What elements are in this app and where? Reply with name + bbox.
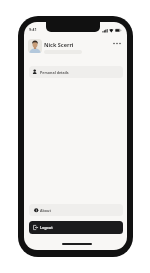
button[interactable]: Logout [29,221,123,234]
staticText: 9:41 [29,27,37,32]
staticText: Logout [40,225,53,230]
button[interactable] [112,40,122,47]
staticText: Personal details [40,70,69,75]
button[interactable] [28,39,42,53]
button[interactable]: About [29,204,123,216]
button[interactable]: Personal details [29,66,123,78]
staticText: Nick Scerri [44,41,74,48]
staticText: About [40,208,51,213]
